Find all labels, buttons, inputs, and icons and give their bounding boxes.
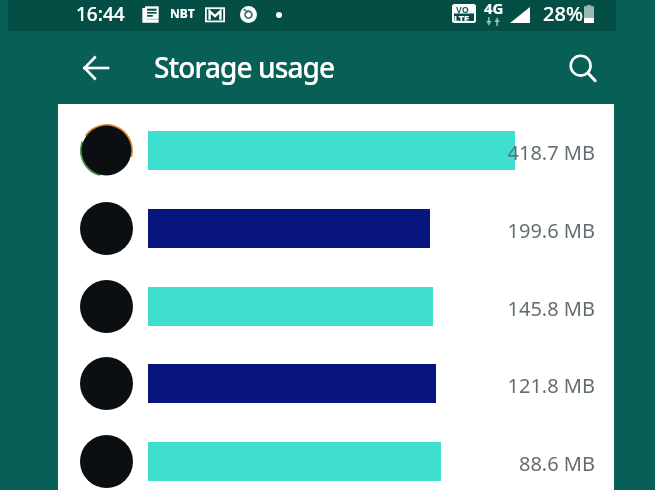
button[interactable]: 199.6 MB [58, 185, 614, 263]
staticText: VO [456, 3, 469, 15]
staticText: 121.8 MB [445, 372, 595, 399]
staticText: 418.7 MB [445, 139, 595, 166]
staticText: LTE [454, 12, 470, 24]
staticText: 145.8 MB [445, 295, 595, 322]
staticText: NBT [170, 5, 195, 21]
button[interactable]: 121.8 MB [58, 340, 614, 418]
button[interactable]: Search [564, 48, 606, 90]
staticText: 16:44 [76, 1, 125, 27]
staticText: 199.6 MB [445, 217, 595, 244]
staticText: 88.6 MB [445, 450, 595, 477]
staticText: Storage usage [154, 48, 335, 86]
button[interactable]: 418.7 MB [58, 107, 614, 185]
staticText: 28% [543, 0, 583, 27]
button[interactable]: 88.6 MB [58, 418, 614, 490]
staticText: 4G [484, 0, 504, 18]
button[interactable]: Back [76, 48, 116, 88]
button[interactable]: 145.8 MB [58, 263, 614, 341]
